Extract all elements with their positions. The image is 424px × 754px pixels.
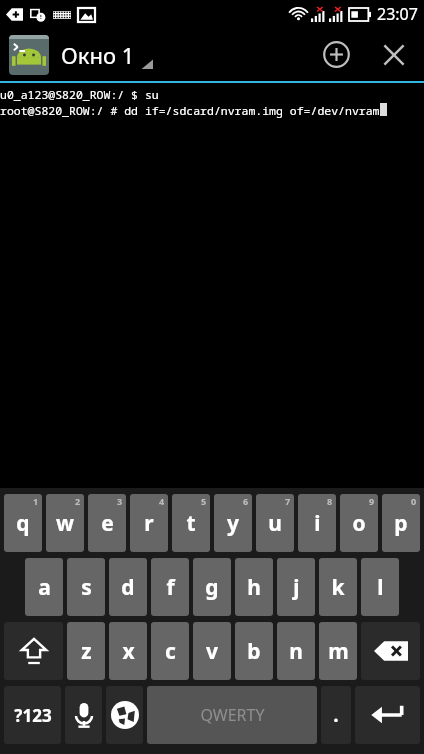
button[interactable]: Окно 1 bbox=[61, 28, 308, 81]
button[interactable]: v bbox=[193, 622, 231, 680]
staticText: 5 bbox=[201, 495, 207, 507]
button[interactable]: c bbox=[151, 622, 189, 680]
button[interactable]: w bbox=[46, 494, 84, 552]
button[interactable]: Voice input bbox=[65, 686, 102, 744]
button[interactable]: j bbox=[277, 558, 315, 616]
staticText: q bbox=[16, 509, 30, 538]
button[interactable]: e bbox=[88, 494, 126, 552]
staticText: t bbox=[186, 509, 196, 538]
staticText: e bbox=[101, 509, 114, 538]
button[interactable]: k bbox=[319, 558, 357, 616]
button[interactable]: . bbox=[321, 686, 351, 744]
staticText: r bbox=[144, 509, 154, 538]
button[interactable]: Change language bbox=[106, 686, 143, 744]
staticText: 8 bbox=[327, 495, 333, 507]
staticText: 1 bbox=[33, 495, 39, 507]
staticText: j bbox=[293, 573, 300, 602]
button[interactable]: y bbox=[214, 494, 252, 552]
button[interactable]: n bbox=[277, 622, 315, 680]
button[interactable]: Shift bbox=[4, 622, 63, 680]
button[interactable]: s bbox=[67, 558, 105, 616]
staticText: a bbox=[38, 573, 51, 602]
button[interactable]: b bbox=[235, 622, 273, 680]
staticText: k bbox=[331, 573, 345, 602]
staticText: g bbox=[205, 573, 219, 602]
staticText: l bbox=[377, 573, 384, 602]
staticText: i bbox=[314, 509, 321, 538]
staticText: h bbox=[247, 573, 261, 602]
staticText: Окно 1 bbox=[61, 40, 135, 70]
button[interactable]: r bbox=[130, 494, 168, 552]
staticText: 23:07 bbox=[377, 3, 418, 25]
staticText: f bbox=[166, 573, 175, 602]
staticText: u0_a123@S820_ROW:/ $ su bbox=[0, 87, 159, 103]
button[interactable]: i bbox=[298, 494, 336, 552]
button[interactable]: o bbox=[340, 494, 378, 552]
button[interactable]: New window bbox=[308, 28, 364, 81]
staticText: p bbox=[394, 509, 408, 538]
button[interactable]: d bbox=[109, 558, 147, 616]
staticText: s bbox=[81, 573, 92, 602]
staticText: o bbox=[352, 509, 366, 538]
staticText: c bbox=[165, 637, 176, 666]
button[interactable]: m bbox=[319, 622, 357, 680]
staticText: . bbox=[333, 702, 339, 728]
staticText: 7 bbox=[285, 495, 291, 507]
staticText: y bbox=[227, 509, 239, 538]
staticText: z bbox=[81, 637, 92, 666]
button[interactable]: l bbox=[361, 558, 399, 616]
staticText: b bbox=[247, 637, 261, 666]
staticText: root@S820_ROW:/ # dd if=/sdcard/nvram.im… bbox=[0, 103, 380, 119]
button[interactable]: p bbox=[382, 494, 420, 552]
staticText: m bbox=[328, 637, 349, 666]
button[interactable]: QWERTY bbox=[147, 686, 317, 744]
button[interactable]: t bbox=[172, 494, 210, 552]
staticText: n bbox=[289, 637, 303, 666]
staticText: w bbox=[56, 509, 74, 538]
button[interactable]: Close window bbox=[364, 28, 424, 81]
staticText: x bbox=[122, 637, 135, 666]
staticText: d bbox=[121, 573, 135, 602]
staticText: 0 bbox=[411, 495, 417, 507]
button[interactable]: ?123 bbox=[4, 686, 61, 744]
button[interactable]: z bbox=[67, 622, 105, 680]
button[interactable]: a bbox=[25, 558, 63, 616]
button[interactable]: h bbox=[235, 558, 273, 616]
staticText: 4 bbox=[159, 495, 165, 507]
staticText: 3 bbox=[117, 495, 123, 507]
button[interactable]: u bbox=[256, 494, 294, 552]
staticText: u bbox=[268, 509, 282, 538]
staticText: v bbox=[206, 637, 218, 666]
staticText: QWERTY bbox=[200, 704, 265, 726]
staticText: 6 bbox=[243, 495, 249, 507]
button[interactable]: f bbox=[151, 558, 189, 616]
staticText: 9 bbox=[369, 495, 375, 507]
button[interactable]: x bbox=[109, 622, 147, 680]
button[interactable]: g bbox=[193, 558, 231, 616]
button[interactable]: Backspace bbox=[361, 622, 420, 680]
staticText: 2 bbox=[75, 495, 81, 507]
button[interactable]: Enter bbox=[355, 686, 420, 744]
button[interactable]: q bbox=[4, 494, 42, 552]
staticText: ?123 bbox=[14, 704, 52, 727]
